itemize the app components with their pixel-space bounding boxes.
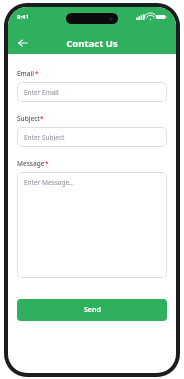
staticText: Enter Message... — [24, 178, 75, 187]
button[interactable]: Send — [17, 299, 167, 321]
staticText: Email — [17, 69, 35, 78]
staticText: * — [40, 114, 44, 123]
staticText: Message — [17, 159, 45, 168]
staticText: Enter Subject — [24, 133, 65, 141]
button[interactable]: Back — [14, 34, 32, 52]
staticText: * — [45, 159, 49, 168]
staticText: Send — [84, 305, 101, 315]
button[interactable]: Enter Message... — [17, 172, 167, 278]
staticText: Enter Email — [24, 88, 59, 96]
button[interactable]: Enter Subject — [17, 127, 167, 147]
staticText: Contact Us — [66, 37, 118, 50]
button[interactable]: Enter Email — [17, 82, 167, 102]
staticText: * — [35, 69, 39, 78]
staticText: Subject — [17, 114, 40, 123]
staticText: 9:41 — [17, 13, 29, 21]
